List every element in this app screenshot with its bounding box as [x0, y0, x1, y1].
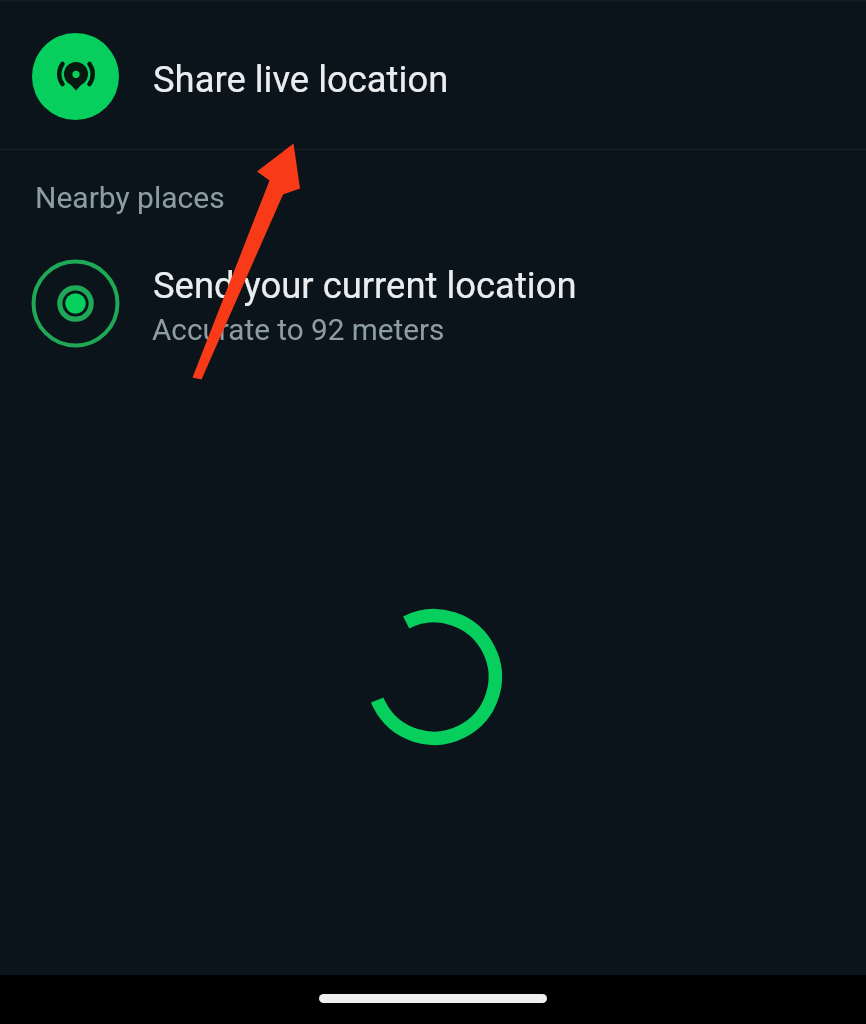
button[interactable]: Send your current location	[0, 248, 866, 360]
button[interactable]: Share live location	[0, 7, 866, 149]
staticText: Share live location	[153, 58, 449, 101]
other: Send your current location	[31, 259, 120, 348]
staticText: Send your current location	[153, 264, 577, 307]
staticText: Accurate to 92 meters	[152, 312, 445, 347]
other: Share live location	[54, 55, 98, 99]
staticText: Nearby places	[35, 180, 225, 215]
